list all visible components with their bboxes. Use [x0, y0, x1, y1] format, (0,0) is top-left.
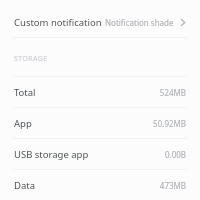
staticText: App [14, 117, 32, 130]
staticText: Notification shade [105, 17, 174, 28]
staticText: 0.00B [164, 149, 186, 160]
staticText: 50.92MB [153, 118, 186, 129]
staticText: 524MB [159, 87, 186, 98]
button[interactable]: App [0, 108, 200, 138]
button[interactable]: Total [0, 77, 200, 107]
staticText: Data [14, 179, 36, 192]
button[interactable]: Custom notification [0, 7, 200, 37]
staticText: USB storage app [14, 148, 89, 161]
staticText: 473MB [159, 180, 186, 191]
staticText: STORAGE [14, 54, 48, 64]
button[interactable]: Data [0, 170, 200, 200]
staticText: Total [14, 86, 36, 99]
staticText: Custom notification [14, 16, 102, 29]
button[interactable]: USB storage app [0, 139, 200, 169]
